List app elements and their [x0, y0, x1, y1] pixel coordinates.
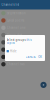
button[interactable]: CANCEL — [26, 55, 36, 59]
staticText: Segmentation — [7, 11, 26, 15]
staticText: Topics — [7, 41, 15, 45]
staticText: CANCEL — [26, 55, 36, 59]
button[interactable]: Lyrical poems — [0, 17, 50, 24]
staticText: Saved messages — [7, 41, 27, 44]
button[interactable]: Channel two — [0, 61, 50, 68]
staticText: Hide — [10, 49, 17, 53]
staticText: OK — [38, 55, 42, 59]
staticText: this — [26, 38, 31, 42]
button[interactable]: Archived — [0, 53, 50, 61]
button[interactable]: Channel one — [0, 24, 50, 31]
button[interactable]: Group chat — [0, 31, 50, 39]
staticText: Channels list — [1, 3, 19, 6]
button[interactable]: New message — [40, 82, 47, 88]
button[interactable]: Saved messages — [0, 39, 50, 46]
staticText: Select groups — [7, 38, 26, 42]
button[interactable]: Segmentation — [0, 9, 50, 17]
staticText: Group chat — [7, 33, 22, 37]
button[interactable]: OK — [38, 55, 42, 59]
button[interactable]: Notes — [0, 46, 50, 53]
staticText: Notes — [7, 48, 15, 51]
